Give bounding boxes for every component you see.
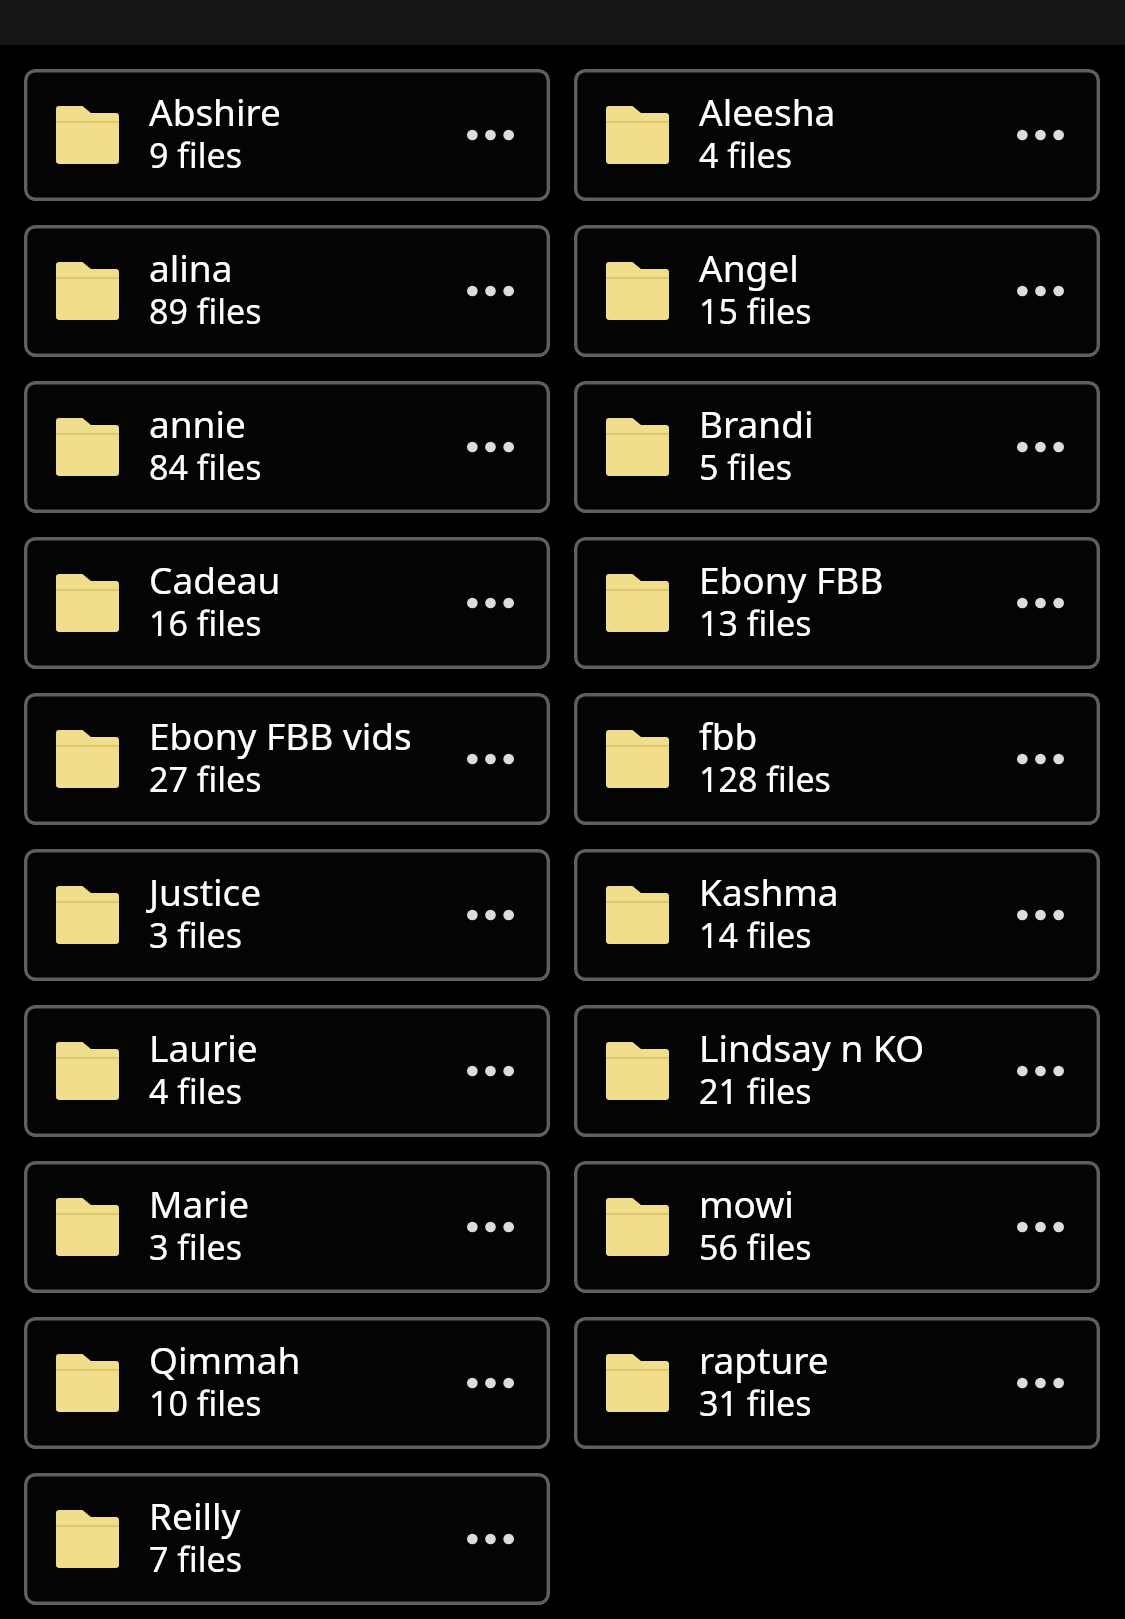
staticText: Abshire bbox=[149, 86, 281, 136]
staticText: Laurie bbox=[149, 1022, 258, 1072]
button[interactable]: Brandi bbox=[574, 381, 1100, 513]
button[interactable]: More options bbox=[452, 1187, 528, 1267]
staticText: Reilly bbox=[149, 1490, 241, 1540]
button[interactable]: Marie bbox=[24, 1161, 550, 1293]
button[interactable]: Ebony FBB vids bbox=[24, 693, 550, 825]
staticText: 10 files bbox=[149, 1380, 262, 1426]
button[interactable]: Lindsay n KO bbox=[574, 1005, 1100, 1137]
staticText: Ebony FBB vids bbox=[149, 710, 412, 760]
button[interactable]: More options bbox=[452, 251, 528, 331]
button[interactable]: More options bbox=[1002, 719, 1078, 799]
staticText: Kashma bbox=[699, 866, 839, 916]
button[interactable]: More options bbox=[452, 1499, 528, 1579]
staticText: alina bbox=[149, 242, 233, 292]
button[interactable]: More options bbox=[452, 95, 528, 175]
staticText: Ebony FBB bbox=[699, 554, 884, 604]
button[interactable]: alina bbox=[24, 225, 550, 357]
staticText: Qimmah bbox=[149, 1334, 301, 1384]
button[interactable]: Kashma bbox=[574, 849, 1100, 981]
staticText: 13 files bbox=[699, 600, 812, 646]
button[interactable]: More options bbox=[1002, 251, 1078, 331]
staticText: 31 files bbox=[699, 1380, 812, 1426]
staticText: Brandi bbox=[699, 398, 814, 448]
button[interactable]: More options bbox=[1002, 1187, 1078, 1267]
staticText: 7 files bbox=[149, 1536, 242, 1582]
button[interactable]: Justice bbox=[24, 849, 550, 981]
staticText: 4 files bbox=[699, 132, 792, 178]
staticText: 21 files bbox=[699, 1068, 812, 1114]
button[interactable]: Ebony FBB bbox=[574, 537, 1100, 669]
staticText: fbb bbox=[699, 710, 758, 760]
button[interactable]: Angel bbox=[574, 225, 1100, 357]
staticText: 3 files bbox=[149, 1224, 242, 1270]
staticText: Marie bbox=[149, 1178, 250, 1228]
button[interactable]: More options bbox=[452, 563, 528, 643]
button[interactable]: More options bbox=[1002, 95, 1078, 175]
staticText: 4 files bbox=[149, 1068, 242, 1114]
button[interactable]: More options bbox=[1002, 1343, 1078, 1423]
button[interactable]: annie bbox=[24, 381, 550, 513]
button[interactable]: Laurie bbox=[24, 1005, 550, 1137]
staticText: rapture bbox=[699, 1334, 829, 1384]
button[interactable]: More options bbox=[1002, 407, 1078, 487]
staticText: 56 files bbox=[699, 1224, 812, 1270]
staticText: mowi bbox=[699, 1178, 794, 1228]
staticText: 84 files bbox=[149, 444, 262, 490]
staticText: 3 files bbox=[149, 912, 242, 958]
staticText: 5 files bbox=[699, 444, 792, 490]
staticText: 14 files bbox=[699, 912, 812, 958]
button[interactable]: mowi bbox=[574, 1161, 1100, 1293]
button[interactable]: Reilly bbox=[24, 1473, 550, 1605]
button[interactable]: Cadeau bbox=[24, 537, 550, 669]
staticText: 9 files bbox=[149, 132, 242, 178]
button[interactable]: More options bbox=[452, 1031, 528, 1111]
button[interactable]: More options bbox=[452, 407, 528, 487]
staticText: 27 files bbox=[149, 756, 262, 802]
button[interactable]: More options bbox=[452, 719, 528, 799]
button[interactable]: More options bbox=[452, 875, 528, 955]
button[interactable]: More options bbox=[1002, 875, 1078, 955]
button[interactable]: rapture bbox=[574, 1317, 1100, 1449]
staticText: 89 files bbox=[149, 288, 262, 334]
button[interactable]: Aleesha bbox=[574, 69, 1100, 201]
button[interactable]: Qimmah bbox=[24, 1317, 550, 1449]
staticText: Cadeau bbox=[149, 554, 281, 604]
staticText: annie bbox=[149, 398, 246, 448]
button[interactable]: More options bbox=[1002, 1031, 1078, 1111]
button[interactable]: More options bbox=[1002, 563, 1078, 643]
button[interactable]: fbb bbox=[574, 693, 1100, 825]
staticText: Lindsay n KO bbox=[699, 1022, 925, 1072]
staticText: Justice bbox=[149, 866, 262, 916]
staticText: 16 files bbox=[149, 600, 262, 646]
staticText: 15 files bbox=[699, 288, 812, 334]
staticText: 128 files bbox=[699, 756, 831, 802]
staticText: Angel bbox=[699, 242, 799, 292]
staticText: Aleesha bbox=[699, 86, 836, 136]
button[interactable]: More options bbox=[452, 1343, 528, 1423]
button[interactable]: Abshire bbox=[24, 69, 550, 201]
